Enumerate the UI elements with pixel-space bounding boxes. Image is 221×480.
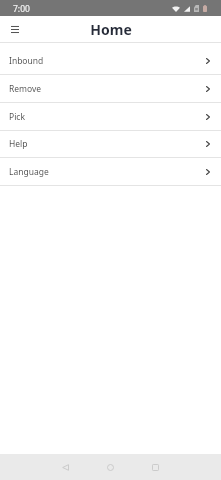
button[interactable]: Remove	[0, 75, 221, 103]
button[interactable]: Pick	[0, 103, 221, 131]
staticText: Home	[90, 20, 132, 39]
staticText: Language	[9, 166, 49, 178]
staticText: 7:00	[13, 3, 30, 15]
button[interactable]: Inbound	[0, 47, 221, 75]
staticText: Remove	[9, 83, 42, 95]
button[interactable]: Recent apps	[146, 458, 165, 477]
staticText: Pick	[9, 111, 25, 123]
button[interactable]: Help	[0, 131, 221, 158]
staticText: Help	[9, 138, 28, 150]
button[interactable]: Back	[56, 458, 75, 477]
button[interactable]: Home	[101, 458, 120, 477]
staticText: Inbound	[9, 55, 44, 67]
button[interactable]: Language	[0, 158, 221, 186]
button[interactable]: Menu	[4, 19, 25, 40]
